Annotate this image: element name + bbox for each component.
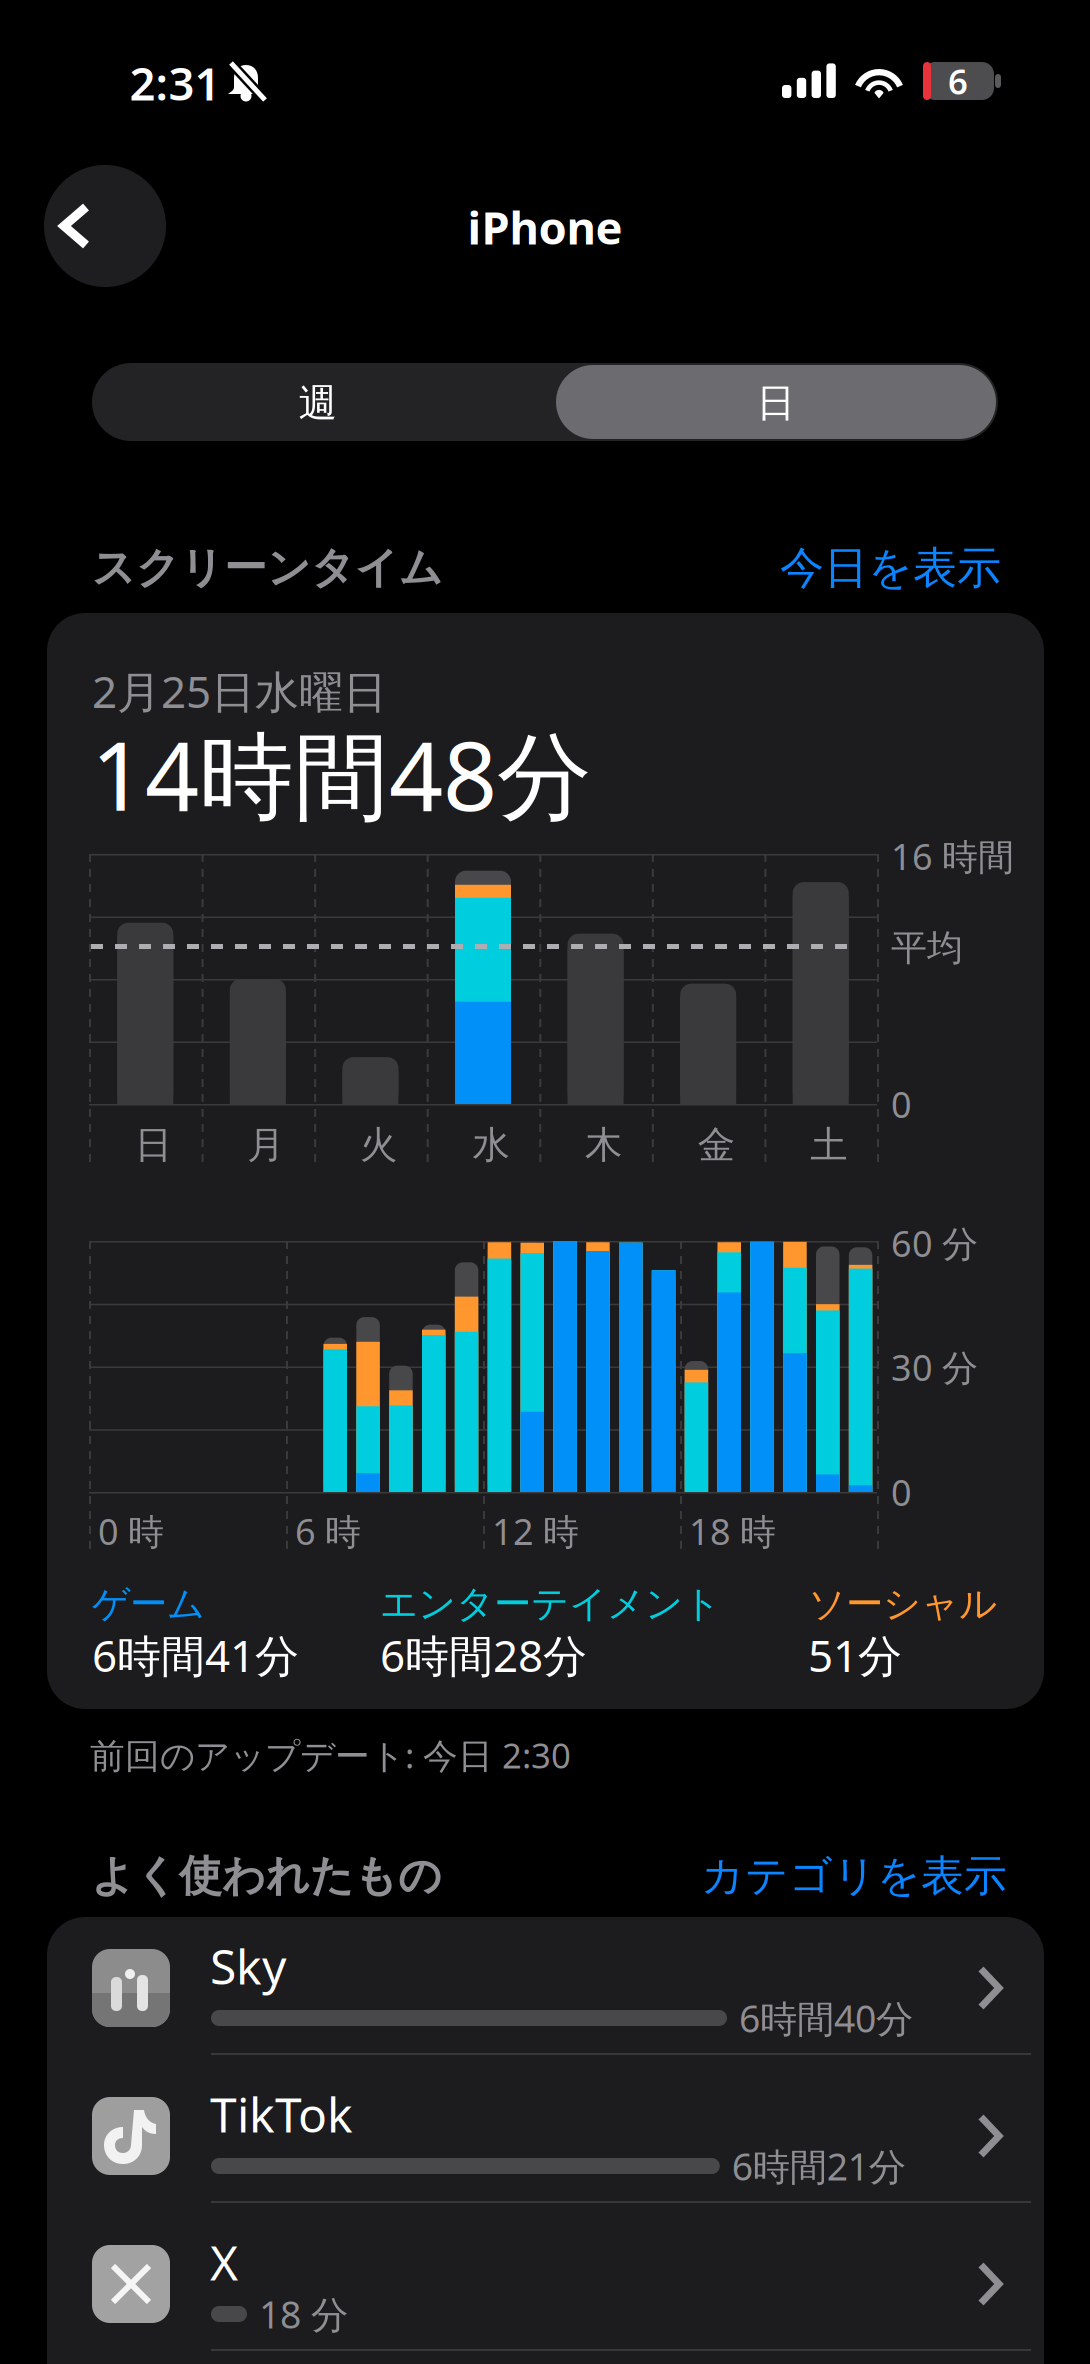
button[interactable]: ソーシャル — [0, 0, 1090, 2364]
staticText: TikTok — [210, 2082, 353, 2146]
button[interactable]: 週 — [0, 0, 1090, 2364]
button[interactable]: ゲーム — [0, 0, 1090, 2364]
staticText: 0 時 — [98, 1507, 164, 1555]
staticText: X — [210, 2230, 238, 2294]
staticText: 6 — [948, 58, 968, 104]
staticText: 0 — [891, 1468, 912, 1516]
staticText: ソーシャル — [808, 1581, 997, 1627]
staticText: 前回のアップデート: 今日 2:30 — [90, 1732, 571, 1778]
staticText: 週 — [298, 379, 337, 427]
staticText: 6時間41分 — [92, 1626, 299, 1684]
button[interactable]: X — [0, 0, 1090, 2364]
staticText: 18 時 — [689, 1507, 776, 1555]
staticText: 日 — [756, 379, 795, 427]
staticText: 今日を表示 — [780, 541, 1001, 595]
button[interactable]: 日 — [0, 0, 1090, 2364]
staticText: 平均 — [891, 926, 963, 970]
button[interactable]: エンターテイメント — [0, 0, 1090, 2364]
staticText: 2月25日水曜日 — [92, 662, 387, 720]
staticText: スクリーンタイム — [92, 542, 443, 594]
staticText: 2:31 — [129, 53, 220, 113]
staticText: 日 — [135, 1122, 172, 1168]
staticText: 18 分 — [259, 2289, 348, 2339]
button[interactable]: Sky — [0, 0, 1090, 2364]
staticText: 51分 — [808, 1626, 902, 1684]
staticText: 土 — [810, 1122, 847, 1168]
staticText: 6時間40分 — [739, 1993, 913, 2043]
staticText: 30 分 — [891, 1343, 978, 1391]
staticText: 60 分 — [891, 1219, 978, 1267]
button[interactable]: TikTok — [0, 0, 1090, 2364]
staticText: 6 時 — [295, 1507, 361, 1555]
button[interactable]: カテゴリを表示 — [0, 0, 1090, 2364]
staticText: 0 — [891, 1080, 912, 1128]
button[interactable]: 今日を表示 — [0, 0, 1090, 2364]
staticText: 木 — [585, 1122, 622, 1168]
staticText: 14時間48分 — [91, 711, 592, 837]
staticText: Sky — [210, 1934, 286, 1998]
button[interactable]: Back — [44, 165, 166, 287]
staticText: 月 — [247, 1122, 284, 1168]
staticText: 水 — [472, 1122, 509, 1168]
staticText: 金 — [698, 1122, 735, 1168]
staticText: よく使われたもの — [91, 1850, 442, 1902]
staticText: 12 時 — [492, 1507, 579, 1555]
staticText: 16 時間 — [891, 832, 1014, 880]
staticText: 火 — [360, 1122, 397, 1168]
staticText: 6時間28分 — [380, 1626, 587, 1684]
staticText: エンターテイメント — [380, 1581, 721, 1627]
staticText: 6時間21分 — [732, 2141, 906, 2191]
staticText: ゲーム — [92, 1581, 205, 1627]
staticText: カテゴリを表示 — [701, 1850, 1007, 1902]
staticText: iPhone — [467, 197, 622, 257]
